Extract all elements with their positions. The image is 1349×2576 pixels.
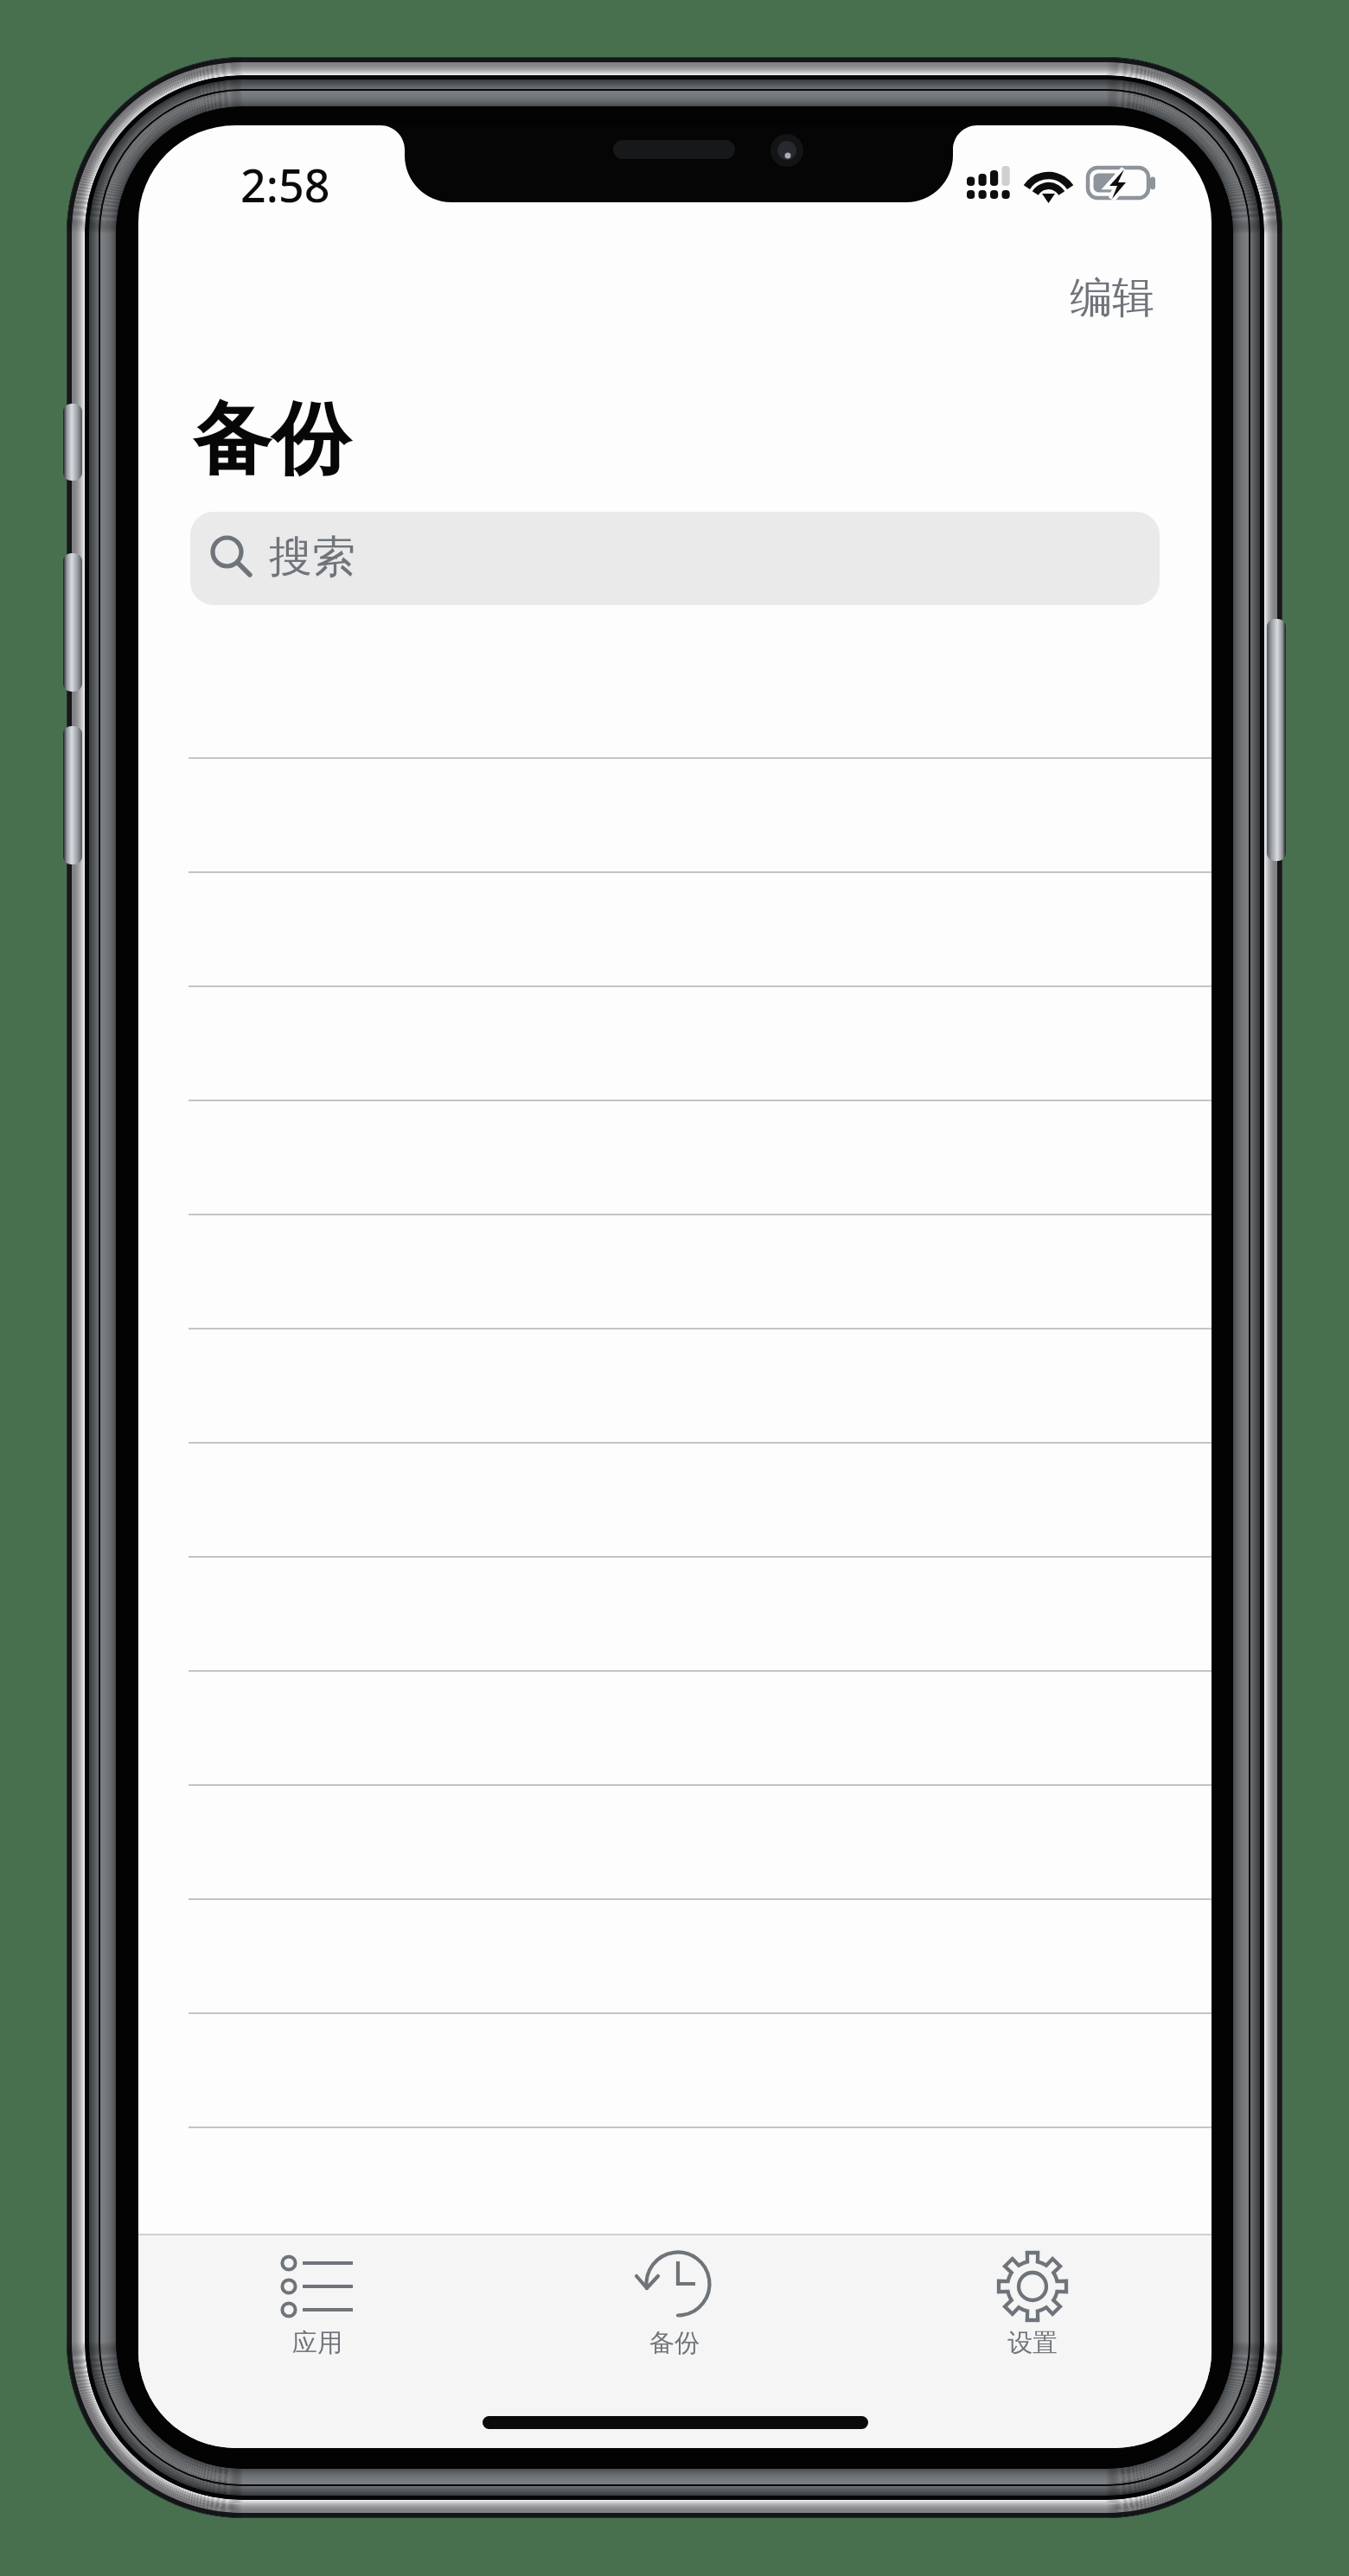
button[interactable] <box>138 1444 1212 1558</box>
staticText: 2:58 <box>240 154 330 215</box>
button[interactable] <box>138 1215 1212 1329</box>
button[interactable] <box>138 1900 1212 2014</box>
button[interactable] <box>138 1329 1212 1444</box>
button[interactable] <box>138 1101 1212 1215</box>
button[interactable] <box>138 1558 1212 1672</box>
button[interactable]: 应用 <box>138 2235 495 2369</box>
staticText: 备份 <box>649 2327 700 2359</box>
staticText: 设置 <box>1007 2327 1058 2359</box>
other: 备份 <box>634 2253 715 2322</box>
button[interactable]: 编辑 <box>1059 265 1165 332</box>
button[interactable] <box>138 2128 1212 2242</box>
button[interactable]: 搜索 <box>190 512 1160 605</box>
staticText: 应用 <box>292 2327 342 2359</box>
other: 设置 <box>994 2253 1071 2325</box>
button[interactable] <box>138 759 1212 873</box>
button[interactable] <box>138 873 1212 987</box>
button[interactable] <box>138 987 1212 1101</box>
button[interactable]: 设置 <box>854 2235 1212 2369</box>
staticText: 编辑 <box>1070 271 1154 325</box>
button[interactable] <box>138 1786 1212 1900</box>
button[interactable]: 备份 <box>495 2235 854 2369</box>
button[interactable] <box>138 645 1212 759</box>
button[interactable] <box>138 2014 1212 2128</box>
other: 应用 <box>280 2253 355 2315</box>
staticText: 备份 <box>193 390 350 489</box>
button[interactable] <box>138 1672 1212 1786</box>
staticText: 搜索 <box>269 530 355 584</box>
